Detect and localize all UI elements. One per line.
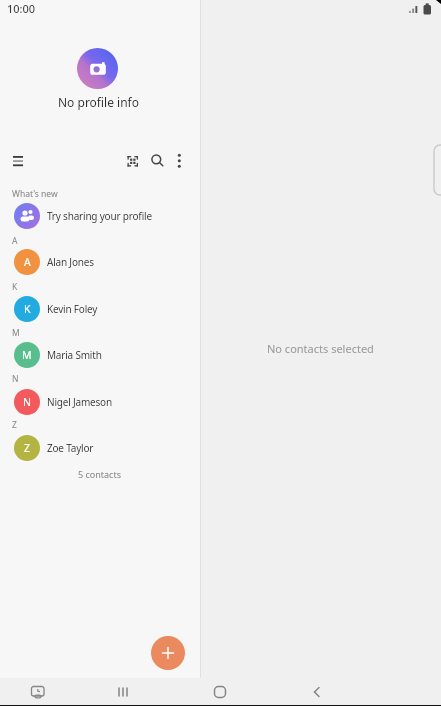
staticText: M bbox=[12, 327, 20, 339]
staticText: M bbox=[22, 348, 32, 362]
staticText: Maria Smith bbox=[47, 348, 102, 362]
button[interactable]: N bbox=[0, 379, 200, 425]
staticText: N bbox=[23, 395, 31, 409]
staticText: 5 contacts bbox=[78, 468, 121, 480]
button[interactable]: Z bbox=[0, 425, 200, 471]
button[interactable] bbox=[305, 680, 329, 704]
staticText: Nigel Jameson bbox=[47, 395, 112, 409]
button[interactable] bbox=[208, 680, 232, 704]
button[interactable] bbox=[8, 151, 28, 171]
staticText: K bbox=[12, 281, 18, 293]
staticText: Try sharing your profile bbox=[47, 209, 152, 223]
staticText: Kevin Foley bbox=[47, 302, 98, 316]
staticText: What's new bbox=[12, 188, 58, 200]
staticText: K bbox=[24, 302, 31, 316]
staticText: Zoe Taylor bbox=[47, 441, 94, 455]
staticText: 10:00 bbox=[7, 1, 36, 16]
staticText: N bbox=[12, 373, 19, 385]
button[interactable] bbox=[149, 152, 167, 170]
staticText: No profile info bbox=[58, 94, 139, 110]
button[interactable]: A bbox=[0, 239, 200, 285]
staticText: Z bbox=[24, 441, 31, 455]
staticText: A bbox=[12, 235, 18, 247]
button[interactable]: M bbox=[0, 332, 200, 378]
button[interactable] bbox=[151, 636, 185, 670]
staticText: A bbox=[24, 255, 31, 269]
staticText: Alan Jones bbox=[47, 255, 94, 269]
button[interactable] bbox=[111, 680, 135, 704]
button[interactable] bbox=[77, 48, 118, 89]
button[interactable]: K bbox=[0, 286, 200, 332]
staticText: Z bbox=[12, 419, 17, 431]
staticText: No contacts selected bbox=[267, 341, 374, 356]
button[interactable] bbox=[171, 151, 187, 171]
button[interactable] bbox=[26, 681, 50, 705]
button[interactable] bbox=[123, 152, 142, 171]
button[interactable]: Try sharing your profile bbox=[0, 193, 200, 239]
